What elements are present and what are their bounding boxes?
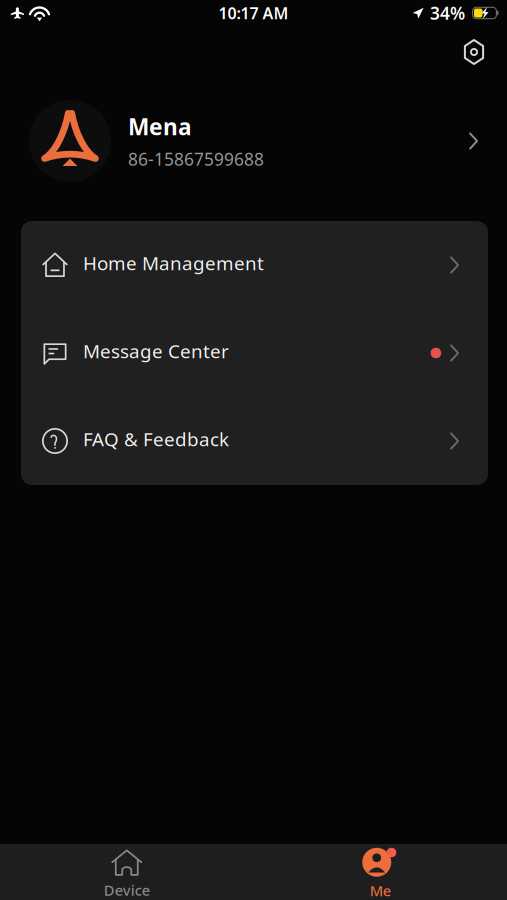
staticText: Message Center xyxy=(83,338,229,364)
button[interactable]: Settings xyxy=(452,30,496,74)
staticText: Mena xyxy=(128,111,192,141)
button[interactable]: Me xyxy=(253,840,507,900)
staticText: 86-15867599688 xyxy=(128,147,264,170)
staticText: Me xyxy=(370,881,391,900)
staticText: 34% xyxy=(430,1,465,24)
staticText: Home Management xyxy=(83,250,264,276)
button[interactable]: Message Center xyxy=(21,309,488,397)
staticText: Device xyxy=(104,880,150,900)
button[interactable]: Home Management xyxy=(21,221,488,309)
staticText: FAQ & Feedback xyxy=(83,426,229,452)
button[interactable]: Mena xyxy=(0,78,507,204)
button[interactable]: FAQ & Feedback xyxy=(21,397,488,485)
button[interactable]: Device xyxy=(0,840,253,900)
staticText: 10:17 AM xyxy=(218,2,288,24)
